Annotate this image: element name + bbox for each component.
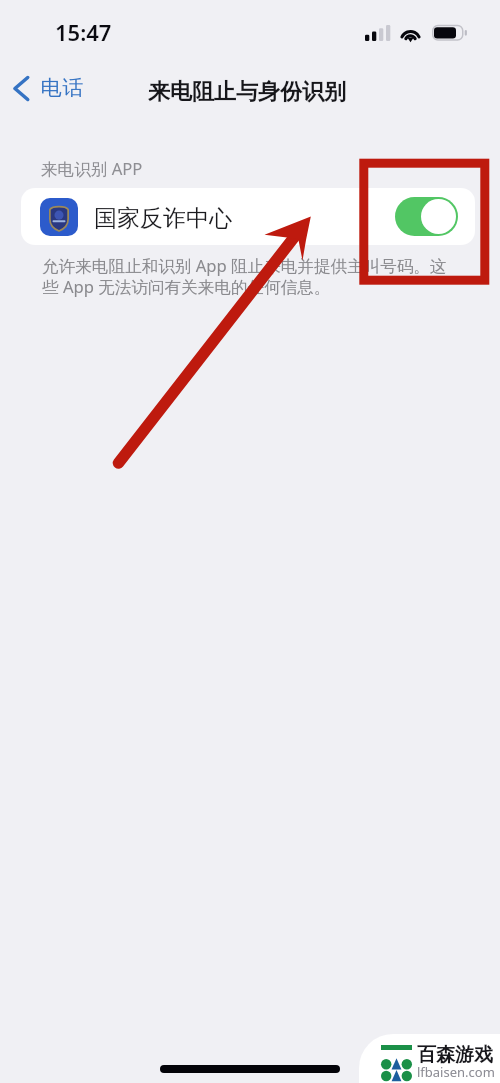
staticText: 国家反诈中心: [94, 204, 232, 233]
button[interactable]: Back to 电话: [6, 72, 94, 104]
button[interactable]: 国家反诈中心: [21, 188, 475, 245]
staticText: 15:47: [55, 17, 112, 47]
staticText: 百森游戏: [417, 1043, 493, 1067]
button[interactable]: Toggle call identification: [395, 197, 458, 236]
staticText: 允许来电阻止和识别 App 阻止来电并提供主叫号码。这些 App 无法访问有关来…: [42, 254, 456, 298]
staticText: 电话: [40, 75, 84, 101]
staticText: lfbaisen.com: [417, 1063, 495, 1081]
staticText: 来电阻止与身份识别: [148, 78, 346, 106]
staticText: 来电识别 APP: [41, 157, 143, 180]
